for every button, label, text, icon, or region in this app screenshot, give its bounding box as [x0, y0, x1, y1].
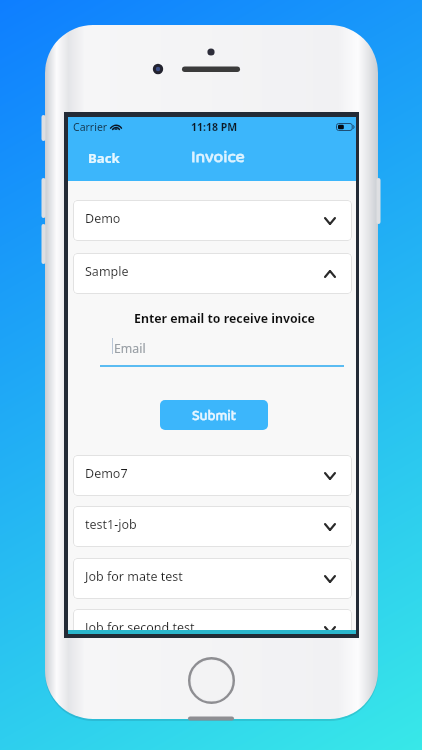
staticText: Sample: [85, 263, 129, 280]
button[interactable]: Job for mate test: [73, 558, 352, 599]
staticText: 11:18 PM: [191, 120, 238, 134]
staticText: Email: [114, 340, 146, 357]
button[interactable]: Back: [88, 145, 120, 171]
staticText: Back: [88, 149, 120, 167]
staticText: Demo: [85, 210, 121, 227]
staticText: test1-job: [85, 516, 137, 533]
button[interactable]: Submit: [160, 400, 268, 430]
button[interactable]: test1-job: [73, 506, 352, 547]
staticText: Enter email to receive invoice: [134, 310, 315, 327]
button[interactable]: Job for second test: [73, 609, 352, 634]
staticText: Demo7: [85, 465, 128, 482]
staticText: Submit: [192, 404, 237, 427]
button[interactable]: Demo: [73, 200, 352, 241]
staticText: Job for mate test: [85, 568, 183, 585]
staticText: Job for second test: [85, 619, 195, 634]
button[interactable]: Demo7: [73, 455, 352, 496]
staticText: Carrier: [73, 120, 108, 134]
button[interactable]: Sample: [73, 253, 352, 294]
staticText: Invoice: [191, 143, 245, 171]
